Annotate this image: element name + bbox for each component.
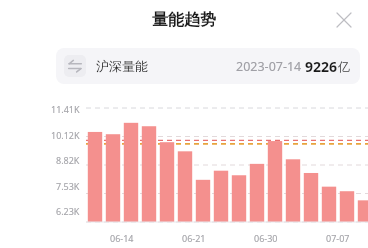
staticText: 06-21 (182, 232, 206, 244)
staticText: 量能趋势 (152, 10, 216, 30)
staticText: 06-14 (110, 232, 134, 244)
staticText: 沪深量能 (96, 58, 148, 74)
staticText: 06-30 (254, 232, 278, 244)
staticText: 10.12K (51, 129, 80, 141)
staticText: 9226 (305, 57, 338, 76)
staticText: 07-07 (326, 232, 350, 244)
button[interactable]: Close (328, 4, 360, 36)
staticText: 7.53K (56, 180, 80, 192)
button[interactable]: 沪深量能 (56, 48, 360, 84)
staticText: 6.23K (56, 205, 80, 217)
staticText: 2023-07-14 (236, 58, 305, 75)
staticText: 8.82K (56, 154, 80, 166)
staticText: 亿 (338, 59, 350, 74)
staticText: 11.41K (51, 103, 80, 115)
